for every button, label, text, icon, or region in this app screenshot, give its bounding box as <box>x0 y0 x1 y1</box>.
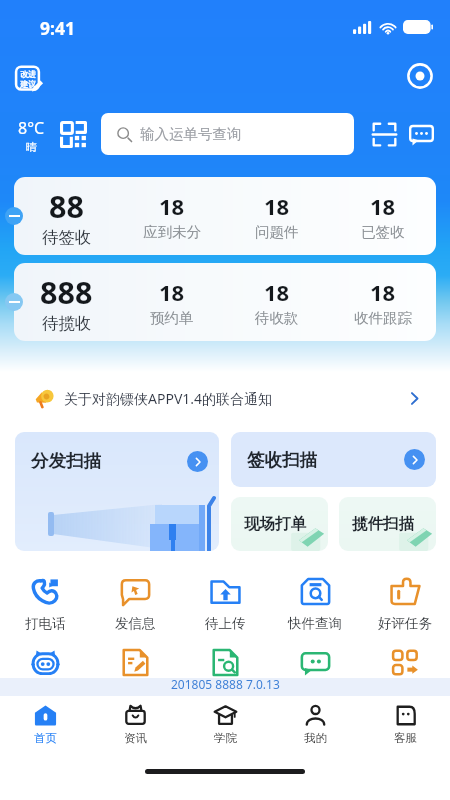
button[interactable]: 88 <box>14 177 436 255</box>
other: 快件查询 <box>300 576 331 607</box>
staticText: 首页 <box>34 731 57 745</box>
button[interactable]: 消息 <box>407 120 435 148</box>
button[interactable]: 扫一扫 <box>370 120 398 148</box>
staticText: 揽件扫描 <box>352 514 414 534</box>
staticText: 建议 <box>20 79 36 89</box>
staticText: 待收款 <box>255 309 299 327</box>
button[interactable]: 功能 <box>360 645 450 680</box>
staticText: 现场打单 <box>244 514 306 534</box>
staticText: 9:41 <box>40 16 75 40</box>
button[interactable]: 8°C <box>10 113 52 157</box>
staticText: 应到未分 <box>143 223 201 241</box>
button[interactable]: 进入 <box>404 449 425 470</box>
other: 功能 <box>210 647 241 678</box>
staticText: 晴 <box>26 140 37 154</box>
other: 打电话 <box>30 576 61 607</box>
staticText: 客服 <box>394 731 417 745</box>
staticText: 88 <box>49 185 84 227</box>
button[interactable]: 揽件扫描 <box>339 497 436 551</box>
staticText: 好评任务 <box>378 615 432 632</box>
staticText: 发信息 <box>115 615 156 632</box>
button[interactable]: 好评任务 <box>360 574 450 634</box>
button[interactable]: 学院 <box>180 696 270 752</box>
staticText: 问题件 <box>255 223 299 241</box>
button[interactable]: 进入 <box>187 451 208 472</box>
button[interactable]: 关于对韵镖侠APPV1.4的联合通知 <box>14 377 436 419</box>
other: 发信息 <box>120 576 151 607</box>
staticText: 改进 <box>20 69 36 79</box>
other: 待上传 <box>210 576 241 607</box>
button[interactable]: 功能 <box>270 645 360 680</box>
other: 功能 <box>300 647 331 678</box>
button[interactable]: 快件查询 <box>270 574 360 634</box>
staticText: 18 <box>370 277 396 307</box>
staticText: 待揽收 <box>42 313 92 334</box>
button[interactable]: 功能 <box>90 645 180 680</box>
staticText: 18 <box>264 277 290 307</box>
staticText: 打电话 <box>25 615 66 632</box>
button[interactable]: 首页 <box>0 696 90 752</box>
button[interactable]: 收起 <box>5 293 23 311</box>
staticText: 签收扫描 <box>247 449 317 471</box>
button[interactable]: 我的 <box>270 696 360 752</box>
staticText: 预约单 <box>150 309 194 327</box>
button[interactable]: 扫码 <box>57 118 89 150</box>
other: 功能 <box>30 647 61 678</box>
staticText: 18 <box>159 191 185 221</box>
staticText: 关于对韵镖侠APPV1.4的联合通知 <box>64 389 273 408</box>
staticText: 888 <box>40 271 93 313</box>
staticText: 已签收 <box>361 223 405 241</box>
staticText: 资讯 <box>124 731 147 745</box>
staticText: 18 <box>159 277 185 307</box>
button[interactable]: 现场打单 <box>231 497 328 551</box>
staticText: 我的 <box>304 731 327 745</box>
button[interactable]: 打电话 <box>0 574 90 634</box>
staticText: 待签收 <box>42 227 92 248</box>
staticText: 输入运单号查询 <box>140 125 242 143</box>
button[interactable]: 输入运单号查询 <box>101 113 354 155</box>
staticText: 收件跟踪 <box>354 309 412 327</box>
button[interactable]: 待上传 <box>180 574 270 634</box>
button[interactable]: 改进建议 <box>14 64 44 94</box>
staticText: 8°C <box>18 117 45 139</box>
button[interactable]: 客服 <box>360 696 450 752</box>
button[interactable]: 功能 <box>0 645 90 680</box>
other: 好评任务 <box>390 576 421 607</box>
button[interactable]: 888 <box>14 263 436 341</box>
button[interactable]: 资讯 <box>90 696 180 752</box>
button[interactable]: 收起 <box>5 207 23 225</box>
staticText: 201805 8888 7.0.13 <box>171 676 280 692</box>
staticText: 18 <box>370 191 396 221</box>
other: 功能 <box>120 647 151 678</box>
button[interactable]: 发信息 <box>90 574 180 634</box>
button[interactable]: 功能 <box>180 645 270 680</box>
button[interactable]: 签收扫描 <box>231 432 436 487</box>
staticText: 分发扫描 <box>31 450 101 472</box>
button[interactable]: 定位 <box>406 62 434 90</box>
other: 功能 <box>390 647 421 678</box>
staticText: 快件查询 <box>288 615 342 632</box>
staticText: 待上传 <box>205 615 246 632</box>
button[interactable]: 分发扫描 <box>15 432 219 551</box>
staticText: 18 <box>264 191 290 221</box>
staticText: 学院 <box>214 731 237 745</box>
